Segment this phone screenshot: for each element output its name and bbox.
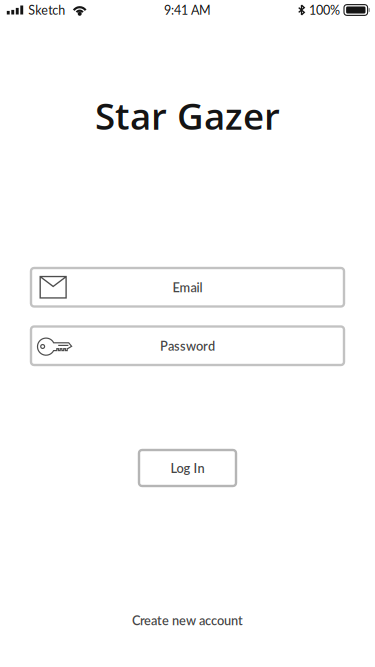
- staticText: Create new account: [132, 613, 243, 628]
- button[interactable]: Log In: [139, 450, 236, 486]
- staticText: Password: [160, 338, 215, 353]
- button[interactable]: Create new account: [118, 606, 257, 635]
- staticText: Log In: [170, 460, 204, 476]
- staticText: Sketch: [28, 2, 65, 17]
- staticText: 9:41 AM: [164, 2, 211, 17]
- button[interactable]: Password: [31, 326, 344, 365]
- staticText: Star Gazer: [95, 90, 280, 140]
- staticText: Email: [172, 280, 202, 295]
- staticText: 100%: [309, 2, 340, 17]
- button[interactable]: Email: [31, 268, 344, 306]
